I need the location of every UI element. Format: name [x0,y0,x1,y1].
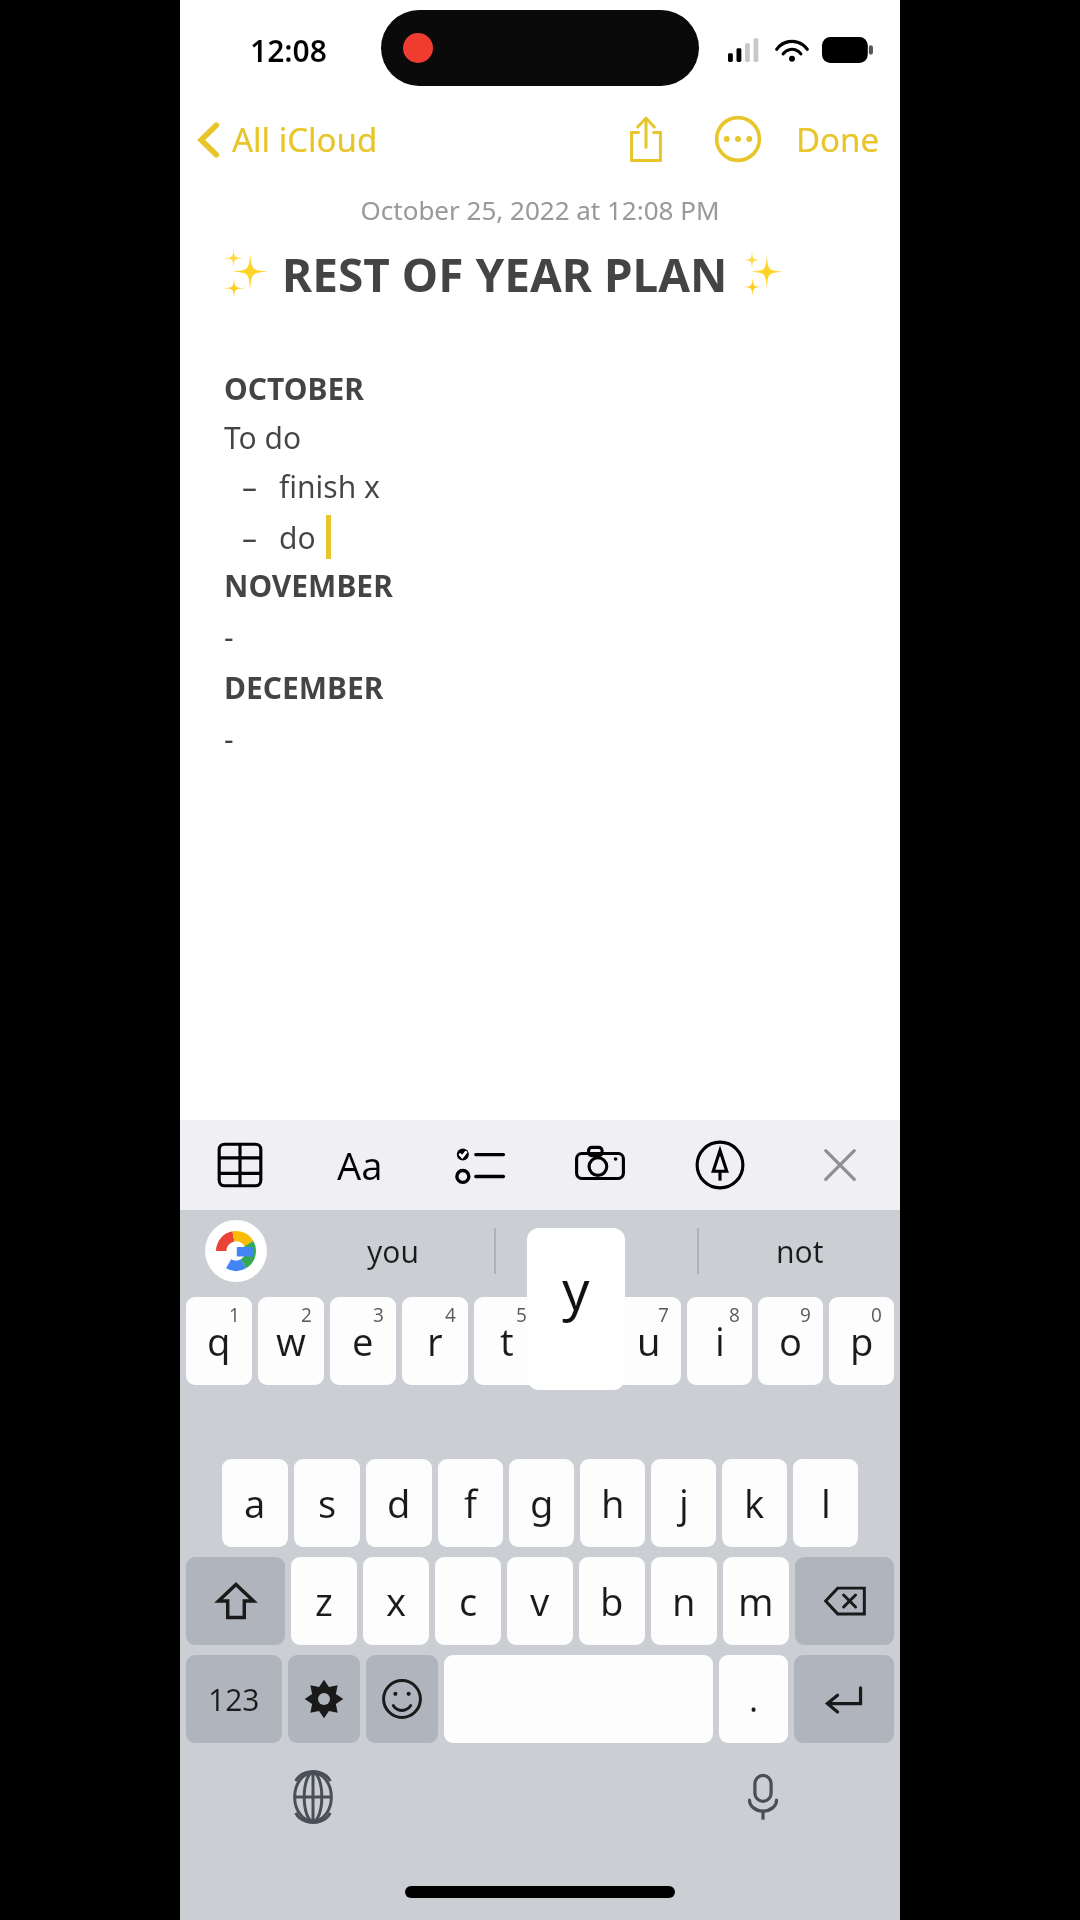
button[interactable]: v [507,1557,573,1645]
button[interactable]: m [723,1557,789,1645]
staticText: j [679,1477,689,1529]
button[interactable]: t [474,1297,539,1385]
button[interactable]: Insert table [180,1120,300,1210]
staticText: f [464,1477,478,1529]
button[interactable]: Shift [186,1557,285,1645]
staticText: you [367,1231,419,1272]
staticText: 1 [229,1302,240,1328]
staticText: o [779,1315,802,1367]
button[interactable]: u [616,1297,681,1385]
button[interactable]: Voice input [736,1770,790,1824]
staticText: 4 [445,1302,456,1328]
button[interactable]: Camera [540,1120,660,1210]
staticText: 123 [208,1679,260,1720]
button[interactable]: n [651,1557,717,1645]
staticText: - [224,616,234,657]
staticText: a [244,1477,266,1529]
button[interactable]: Enter [794,1655,894,1743]
staticText: l [821,1477,831,1529]
staticText: Aa [337,1139,383,1191]
button[interactable]: g [509,1459,574,1547]
button[interactable]: s [294,1459,360,1547]
button[interactable]: Markup [660,1120,780,1210]
staticText: q [207,1315,231,1367]
staticText: p [850,1315,874,1367]
staticText: h [601,1477,625,1529]
staticText: REST OF YEAR PLAN [282,243,728,306]
staticText: v [530,1575,550,1627]
button[interactable]: w [258,1297,324,1385]
staticText: finish x [279,466,380,507]
button[interactable]: c [435,1557,501,1645]
button[interactable]: Share [612,102,680,176]
staticText: 0 [871,1302,882,1328]
button[interactable]: z [291,1557,357,1645]
button[interactable]: h [580,1459,645,1547]
staticText: m [738,1575,774,1627]
staticText: not [776,1231,824,1272]
button[interactable]: f [438,1459,503,1547]
button[interactable]: i [687,1297,752,1385]
staticText: g [530,1477,554,1529]
staticText: 3 [373,1302,384,1328]
staticText: . [749,1676,759,1722]
button[interactable]: 123 [186,1655,282,1743]
staticText: Done [796,117,880,162]
staticText: r [427,1315,443,1367]
staticText: k [744,1477,765,1529]
staticText: - [224,718,234,759]
staticText: 2 [301,1302,312,1328]
staticText: All iCloud [232,117,378,162]
button[interactable]: a [222,1459,288,1547]
staticText: z [315,1575,333,1627]
staticText: To do [224,417,302,458]
staticText: 5 [516,1302,527,1328]
button[interactable]: More options [702,103,774,175]
staticText: – [242,517,257,558]
button[interactable]: Checklist [420,1120,540,1210]
staticText: b [600,1575,624,1627]
button[interactable]: p [829,1297,894,1385]
button[interactable]: k [722,1459,787,1547]
button[interactable]: d [366,1459,432,1547]
button[interactable]: Format text [300,1120,420,1210]
staticText: s [318,1477,337,1529]
button[interactable]: x [363,1557,429,1645]
button[interactable]: not [699,1210,900,1292]
staticText: d [387,1477,411,1529]
staticText: do [279,517,316,558]
button[interactable]: y [496,1210,697,1292]
button[interactable]: Backspace [795,1557,894,1645]
staticText: u [637,1315,661,1367]
button[interactable]: Close keyboard [780,1120,900,1210]
staticText: 8 [729,1302,740,1328]
button[interactable]: l [793,1459,858,1547]
staticText: y [562,1252,590,1326]
staticText: n [672,1575,696,1627]
button[interactable]: r [402,1297,468,1385]
button[interactable]: Google [180,1210,292,1292]
staticText: w [276,1315,306,1367]
button[interactable]: you [292,1210,494,1292]
button[interactable]: . [719,1655,788,1743]
button[interactable]: Done [790,107,886,172]
staticText: 9 [800,1302,811,1328]
staticText: OCTOBER [224,368,364,409]
staticText: 7 [658,1302,669,1328]
staticText: t [500,1315,514,1367]
button[interactable]: o [758,1297,823,1385]
button[interactable]: Emoji [366,1655,438,1743]
button[interactable]: All iCloud [180,109,390,170]
button[interactable]: b [579,1557,645,1645]
button[interactable]: e [330,1297,396,1385]
button[interactable]: Keyboard settings [288,1655,360,1743]
button[interactable]: Change language [286,1770,340,1824]
button[interactable]: q [186,1297,252,1385]
staticText: c [459,1575,478,1627]
staticText: x [386,1575,407,1627]
staticText: DECEMBER [224,667,384,708]
button[interactable]: j [651,1459,716,1547]
